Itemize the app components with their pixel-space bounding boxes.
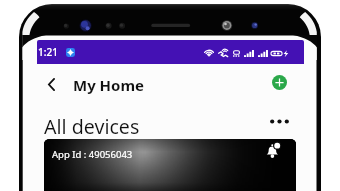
button[interactable]: App Id : 49056043 [44,139,296,191]
staticText: App Id : 49056043 [52,148,133,161]
button[interactable]: Add device [272,75,287,90]
staticText: My Home [73,75,145,95]
button[interactable]: Back [42,75,60,93]
button[interactable]: More options [266,110,292,132]
staticText: 1:21 [38,45,58,59]
staticText: All devices [44,113,140,140]
